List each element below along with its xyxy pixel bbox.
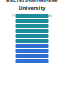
staticText: University <box>18 4 45 11</box>
staticText: BELTEI International <box>6 0 58 3</box>
staticText: Free Programs for you <box>12 12 52 18</box>
